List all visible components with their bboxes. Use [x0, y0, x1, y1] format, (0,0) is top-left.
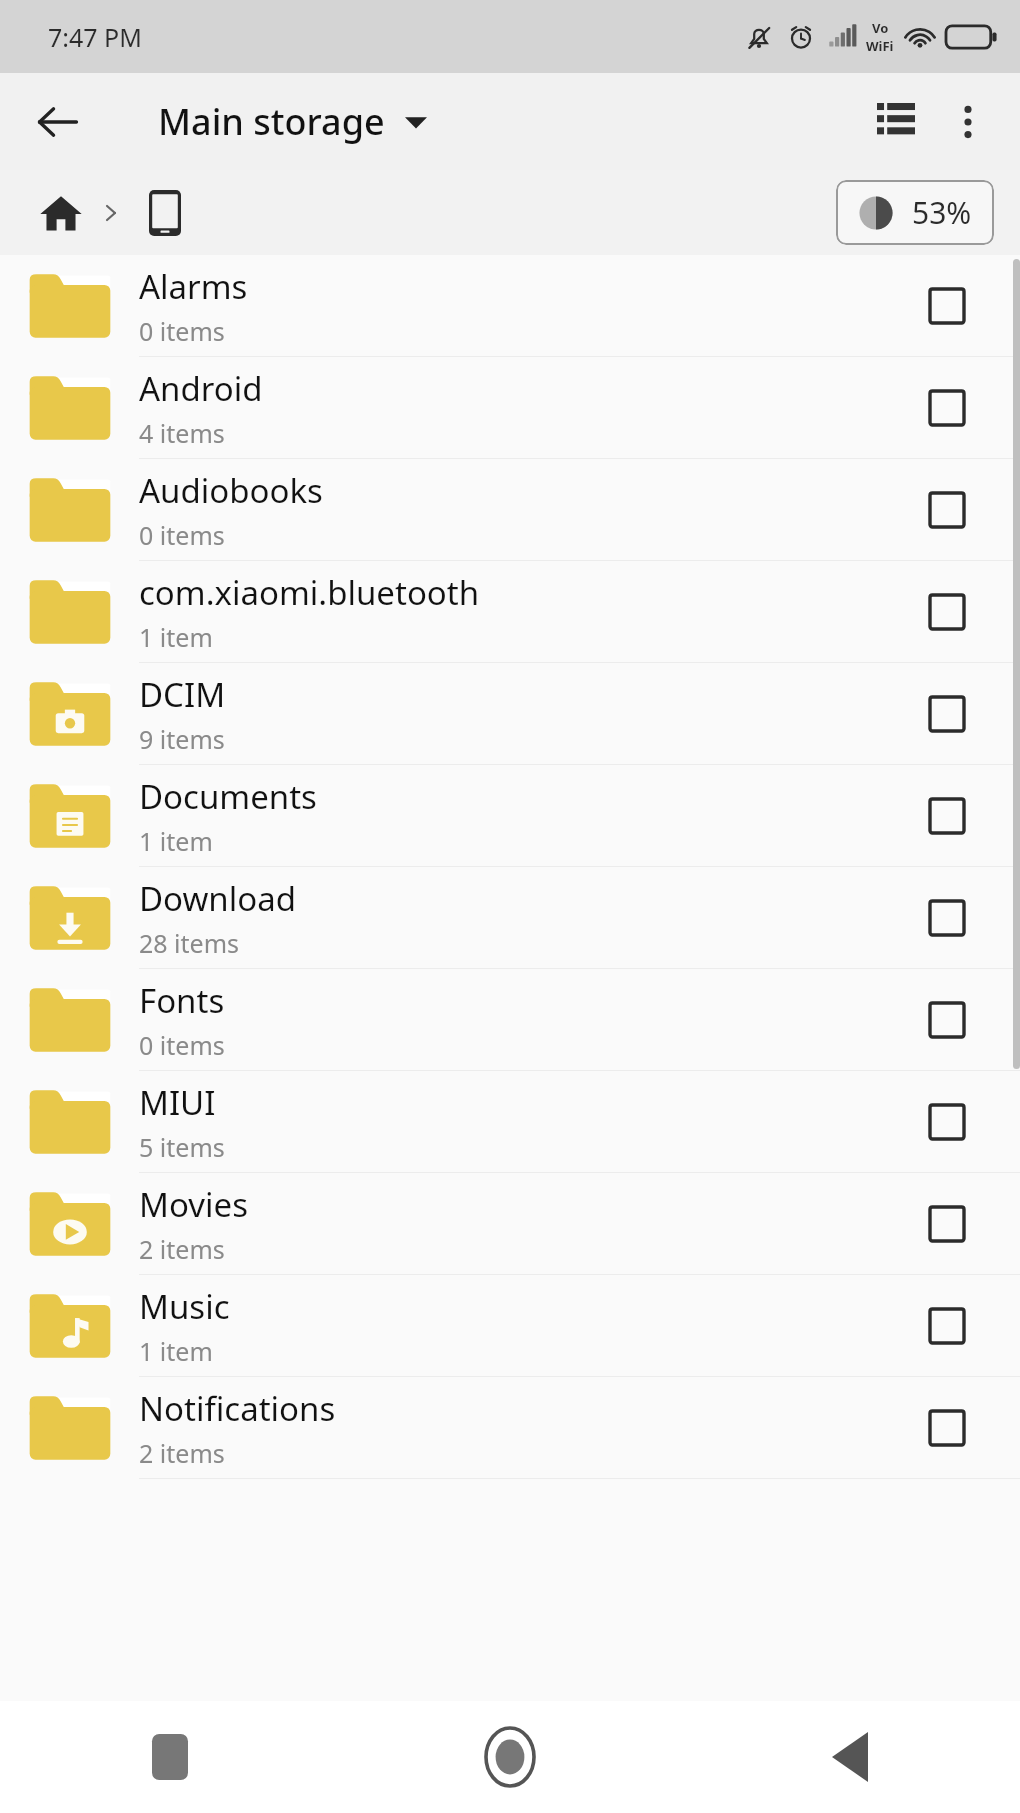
staticText: 28 items — [139, 926, 240, 960]
staticText: Documents — [139, 774, 317, 819]
staticText: Movies — [139, 1182, 248, 1227]
button[interactable]: Select Alarms — [902, 261, 992, 351]
button[interactable]: More options — [932, 86, 1004, 158]
staticText: 1 item — [139, 824, 213, 858]
staticText: Alarms — [139, 264, 248, 309]
staticText: Fonts — [139, 978, 225, 1023]
button[interactable]: Select Android — [902, 363, 992, 453]
button[interactable]: List view — [860, 86, 932, 158]
button[interactable]: Movies — [0, 1173, 1020, 1275]
button[interactable]: DCIM — [0, 663, 1020, 765]
staticText: 1 item — [139, 1334, 213, 1368]
button[interactable]: Recents — [0, 1701, 340, 1813]
button[interactable]: Select DCIM — [902, 669, 992, 759]
staticText: 5 items — [139, 1130, 225, 1164]
staticText: Music — [139, 1284, 230, 1329]
button[interactable]: MIUI — [0, 1071, 1020, 1173]
button[interactable]: Select Audiobooks — [902, 465, 992, 555]
button[interactable]: Main storage — [134, 182, 196, 244]
button[interactable]: Music — [0, 1275, 1020, 1377]
button[interactable]: Alarms — [0, 255, 1020, 357]
staticText: Audiobooks — [139, 468, 323, 513]
button[interactable]: 53% — [836, 180, 994, 245]
button[interactable]: com.xiaomi.bluetooth — [0, 561, 1020, 663]
button[interactable]: Select Download — [902, 873, 992, 963]
button[interactable]: Home — [340, 1701, 680, 1813]
staticText: Download — [139, 876, 297, 921]
staticText: WiFi — [866, 37, 894, 55]
staticText: 0 items — [139, 314, 225, 348]
staticText: Android — [139, 366, 263, 411]
button[interactable]: Android — [0, 357, 1020, 459]
staticText: Main storage — [158, 97, 385, 146]
button[interactable]: Select Music — [902, 1281, 992, 1371]
button[interactable]: Download — [0, 867, 1020, 969]
staticText: MIUI — [139, 1080, 216, 1125]
button[interactable]: Back — [680, 1701, 1020, 1813]
button[interactable]: Main storage — [158, 97, 427, 146]
button[interactable]: Documents — [0, 765, 1020, 867]
staticText: 4 items — [139, 416, 225, 450]
staticText: 1 item — [139, 620, 213, 654]
staticText: 53% — [912, 192, 972, 233]
button[interactable]: Select Fonts — [902, 975, 992, 1065]
staticText: Notifications — [139, 1386, 336, 1431]
button[interactable]: Back — [22, 86, 94, 158]
button[interactable]: Home — [30, 182, 92, 244]
button[interactable]: Select Movies — [902, 1179, 992, 1269]
staticText: 2 items — [139, 1232, 225, 1266]
button[interactable]: Audiobooks — [0, 459, 1020, 561]
button[interactable]: Select MIUI — [902, 1077, 992, 1167]
staticText: 0 items — [139, 1028, 225, 1062]
staticText: 2 items — [139, 1436, 225, 1470]
button[interactable]: Select Documents — [902, 771, 992, 861]
button[interactable]: Select com.xiaomi.bluetooth — [902, 567, 992, 657]
staticText: com.xiaomi.bluetooth — [139, 570, 480, 615]
staticText: 0 items — [139, 518, 225, 552]
button[interactable]: Notifications — [0, 1377, 1020, 1479]
staticText: DCIM — [139, 672, 226, 717]
staticText: 9 items — [139, 722, 225, 756]
staticText: Vo — [872, 19, 889, 37]
button[interactable]: Fonts — [0, 969, 1020, 1071]
staticText: 7:47 PM — [48, 20, 142, 54]
button[interactable]: Select Notifications — [902, 1383, 992, 1473]
